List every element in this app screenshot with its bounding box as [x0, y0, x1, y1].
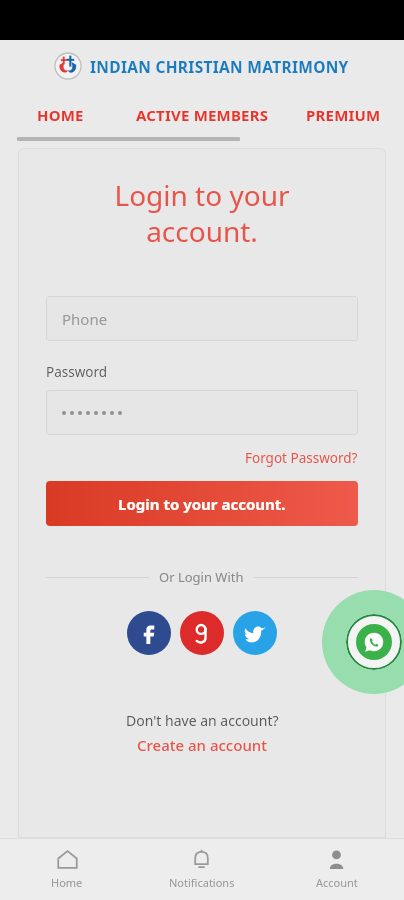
staticText: Login to your account.: [118, 494, 286, 514]
button[interactable]: Account: [269, 838, 404, 900]
staticText: Home: [51, 875, 83, 890]
button[interactable]: Notifications: [134, 838, 269, 900]
staticText: Or Login With: [159, 568, 244, 586]
staticText: Don't have an account?: [126, 711, 279, 730]
staticText: Account: [316, 875, 358, 890]
button[interactable]: Chat on WhatsApp: [322, 590, 404, 694]
staticText: Forgot Password?: [245, 449, 358, 467]
staticText: HOME: [37, 105, 84, 125]
button[interactable]: Forgot Password?: [245, 449, 358, 467]
button[interactable]: HOME: [0, 92, 121, 137]
button[interactable]: [46, 390, 358, 435]
button[interactable]: Login to your account.: [46, 481, 358, 526]
staticText: Phone: [62, 309, 108, 329]
staticText: Create an account: [137, 735, 267, 755]
staticText: Notifications: [169, 875, 235, 890]
button[interactable]: Twitter: [233, 611, 277, 655]
staticText: Password: [46, 363, 108, 381]
button[interactable]: Phone: [46, 296, 358, 341]
button[interactable]: Facebook: [127, 611, 171, 655]
staticText: Login to your account.: [114, 176, 290, 250]
staticText: INDIAN CHRISTIAN MATRIMONY: [90, 56, 349, 77]
button[interactable]: Home: [0, 838, 134, 900]
staticText: ACTIVE MEMBERS: [136, 105, 269, 125]
button[interactable]: PREMIUM: [283, 92, 404, 137]
button[interactable]: Google Plus: [180, 611, 224, 655]
staticText: PREMIUM: [306, 105, 381, 125]
button[interactable]: ACTIVE MEMBERS: [121, 92, 283, 137]
button[interactable]: Create an account: [137, 735, 267, 755]
